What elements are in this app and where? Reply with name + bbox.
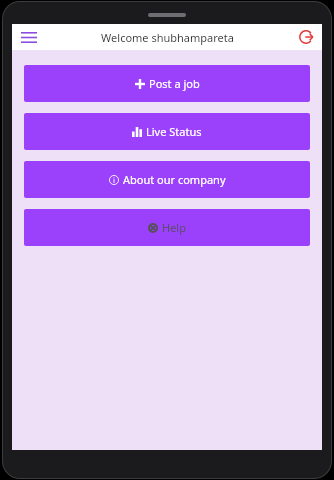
- staticText: About our company: [123, 172, 226, 187]
- button[interactable]: Post a job: [24, 65, 310, 102]
- button[interactable]: Help: [24, 209, 310, 246]
- staticText: Post a job: [149, 76, 200, 91]
- staticText: Live Status: [146, 124, 202, 139]
- button[interactable]: About our company: [24, 161, 310, 198]
- staticText: Welcome shubhampareta: [101, 30, 234, 45]
- button[interactable]: Open navigation menu: [18, 26, 40, 48]
- button[interactable]: Log out: [295, 26, 317, 48]
- staticText: Help: [162, 220, 186, 235]
- button[interactable]: Live Status: [24, 113, 310, 150]
